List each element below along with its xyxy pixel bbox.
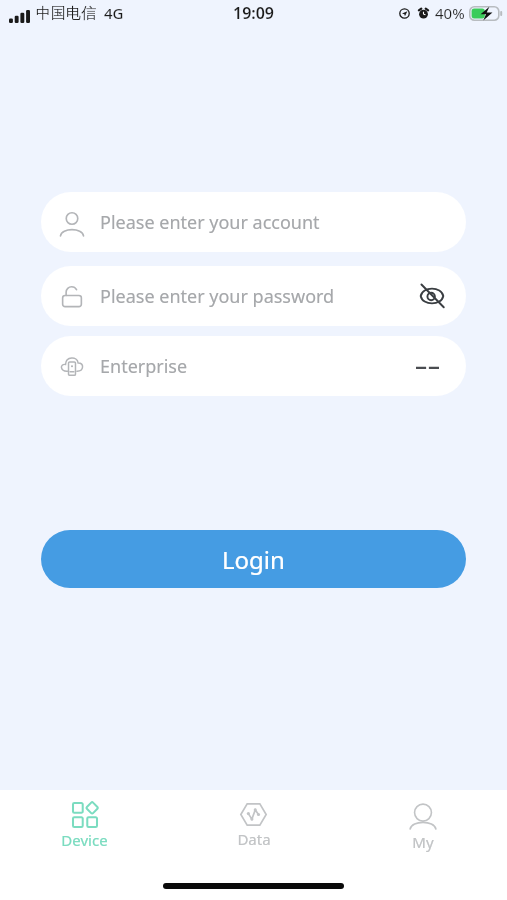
button[interactable]: Please enter your password (41, 266, 466, 326)
button[interactable]: Enterprise (41, 336, 466, 396)
staticText: 40% (435, 3, 465, 23)
staticText: Login (222, 543, 285, 576)
staticText: Enterprise (100, 354, 188, 379)
button[interactable]: Data (169, 803, 338, 870)
staticText: 19:09 (233, 2, 275, 24)
staticText: Data (237, 829, 271, 849)
staticText: 4G (104, 3, 124, 23)
button[interactable]: Login (41, 530, 466, 588)
button[interactable]: My (338, 803, 507, 870)
staticText: Device (61, 830, 108, 850)
staticText: Please enter your account (100, 210, 320, 235)
button[interactable]: Please enter your account (41, 192, 466, 252)
button[interactable]: Show password (412, 276, 452, 316)
button[interactable]: Device (0, 803, 169, 870)
staticText: 中国电信 (36, 4, 96, 23)
staticText: Please enter your password (100, 284, 335, 309)
staticText: My (412, 832, 434, 852)
